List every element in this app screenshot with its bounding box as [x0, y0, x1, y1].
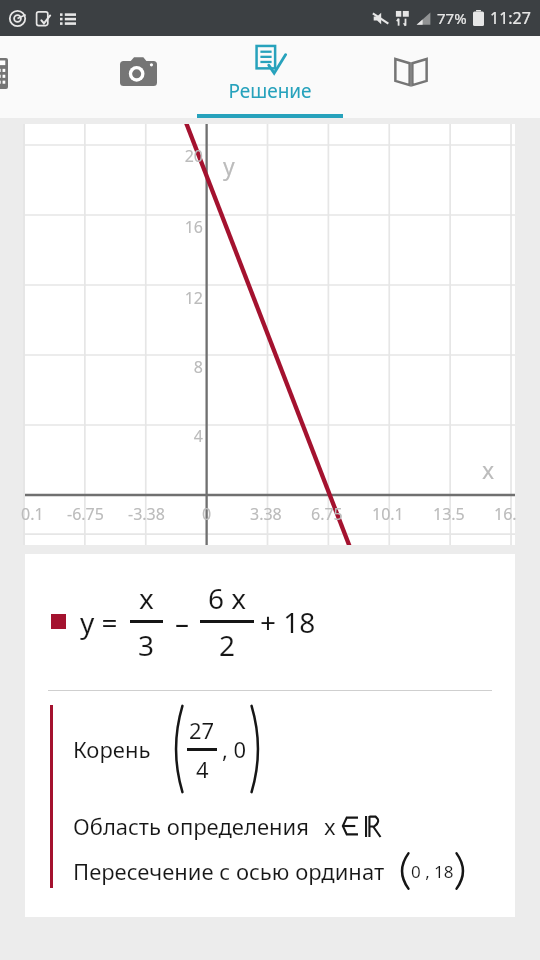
staticText: + 18	[260, 603, 316, 641]
staticText: 0	[202, 503, 212, 525]
staticText: 16.	[494, 503, 517, 525]
button[interactable]: y =	[25, 554, 515, 917]
staticText: x	[324, 811, 336, 841]
staticText: 13.5	[433, 503, 465, 525]
staticText: 10.1	[372, 503, 404, 525]
button[interactable]: Glossary	[374, 34, 448, 108]
staticText: 4	[196, 754, 209, 784]
button[interactable]: Calculator	[0, 36, 24, 118]
staticText: 20	[175, 145, 203, 167]
staticText: x	[482, 454, 495, 485]
staticText: x	[139, 579, 154, 617]
staticText: 6.75	[311, 503, 343, 525]
staticText: 4	[175, 425, 203, 447]
staticText: 3.38	[250, 503, 282, 525]
staticText: 6 x	[208, 579, 247, 617]
button[interactable]: 20	[25, 124, 515, 545]
staticText: Корень	[73, 734, 151, 764]
staticText: y =	[80, 603, 118, 641]
staticText: 77%	[437, 8, 467, 28]
staticText: 0.1	[21, 503, 44, 525]
staticText: 8	[175, 356, 203, 378]
staticText: y	[223, 150, 235, 181]
button[interactable]: Решение	[197, 36, 343, 118]
staticText: , 0	[222, 734, 247, 764]
staticText: 11:27	[490, 7, 531, 29]
staticText: -6.75	[67, 503, 104, 525]
staticText: 16	[175, 216, 203, 238]
staticText: Область определения	[73, 811, 309, 841]
staticText: -3.38	[128, 503, 165, 525]
staticText: Решение	[228, 78, 312, 104]
staticText: 2	[219, 626, 236, 664]
staticText: 0 , 18	[411, 860, 454, 883]
staticText: 27	[189, 715, 215, 745]
staticText: Пересечение с осью ординат	[73, 856, 385, 886]
button[interactable]: Camera	[101, 34, 175, 108]
staticText: –	[175, 603, 190, 641]
staticText: 12	[175, 287, 203, 309]
staticText: 3	[138, 626, 155, 664]
